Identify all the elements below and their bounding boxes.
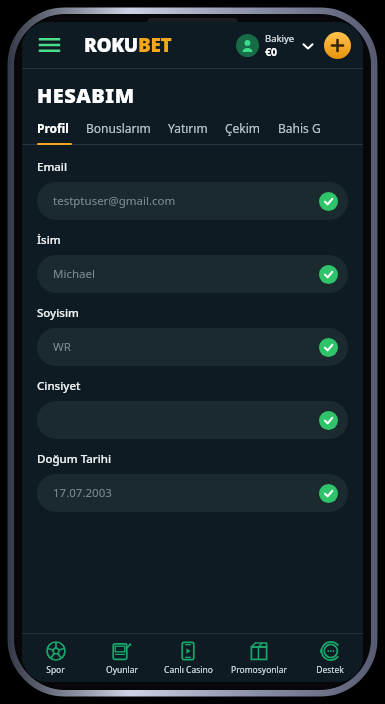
staticText: Soyisim bbox=[37, 305, 79, 321]
staticText: Spor bbox=[46, 664, 65, 676]
button[interactable]: Çekim bbox=[225, 120, 278, 136]
button[interactable]: testptuser@gmail.com bbox=[37, 182, 348, 220]
staticText: Promosyonlar bbox=[231, 664, 287, 676]
button[interactable]: Add funds bbox=[324, 32, 351, 59]
staticText: Cinsiyet bbox=[37, 378, 81, 394]
staticText: Bahis G bbox=[278, 120, 321, 136]
staticText: Oyunlar bbox=[106, 664, 138, 676]
button[interactable]: Menu bbox=[34, 30, 64, 60]
staticText: WR bbox=[53, 339, 71, 355]
button[interactable]: Bahis G bbox=[278, 120, 338, 136]
staticText: testptuser@gmail.com bbox=[53, 193, 176, 209]
button[interactable]: Yatırım bbox=[168, 120, 225, 136]
staticText: Canlı Casino bbox=[164, 664, 213, 676]
button[interactable]: Canlı Casino bbox=[155, 634, 221, 682]
button[interactable]: Destek bbox=[297, 634, 363, 682]
staticText: İsim bbox=[37, 232, 61, 248]
button[interactable]: Bakiye bbox=[236, 32, 314, 59]
staticText: Destek bbox=[316, 664, 344, 676]
button[interactable]: Oyunlar bbox=[89, 634, 155, 682]
staticText: Çekim bbox=[225, 120, 261, 136]
button[interactable]: 17.07.2003 bbox=[37, 474, 348, 512]
button[interactable] bbox=[37, 401, 348, 439]
staticText: ROKU bbox=[84, 32, 138, 58]
staticText: Email bbox=[37, 159, 68, 175]
staticText: Bonuslarım bbox=[86, 120, 151, 136]
button[interactable]: Bonuslarım bbox=[86, 120, 168, 136]
staticText: Michael bbox=[53, 266, 95, 282]
staticText: HESABIM bbox=[37, 82, 135, 109]
staticText: Bakiye bbox=[265, 32, 295, 45]
staticText: Profil bbox=[37, 120, 69, 136]
button[interactable]: Michael bbox=[37, 255, 348, 293]
button[interactable]: WR bbox=[37, 328, 348, 366]
staticText: Doğum Tarihi bbox=[37, 451, 112, 467]
button[interactable]: Spor bbox=[22, 634, 89, 682]
staticText: 17.07.2003 bbox=[53, 485, 112, 501]
staticText: BET bbox=[138, 32, 172, 58]
button[interactable]: Profil bbox=[37, 120, 86, 136]
staticText: €0 bbox=[265, 45, 278, 59]
button[interactable]: Promosyonlar bbox=[221, 634, 297, 682]
staticText: Yatırım bbox=[168, 120, 208, 136]
